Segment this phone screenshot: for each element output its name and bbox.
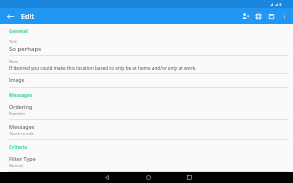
button[interactable]: Note xyxy=(0,56,293,74)
staticText: Title xyxy=(9,39,17,44)
button[interactable]: Title xyxy=(0,36,293,56)
staticText: Edit xyxy=(21,11,35,21)
button[interactable]: Ordering xyxy=(0,100,293,120)
button[interactable]: Save xyxy=(265,10,278,23)
staticText: Ordering xyxy=(9,103,33,110)
button[interactable]: More options xyxy=(278,10,291,23)
staticText: Note xyxy=(9,59,19,64)
button[interactable]: Filter Type xyxy=(0,152,293,172)
staticText: Normal xyxy=(9,163,24,168)
staticText: So perhaps xyxy=(9,45,42,53)
staticText: Image xyxy=(9,77,25,84)
button[interactable]: Add person xyxy=(239,10,252,23)
button[interactable]: Messages xyxy=(0,120,293,140)
staticText: Criteria xyxy=(9,144,28,151)
staticText: General xyxy=(9,28,28,35)
button[interactable]: Back xyxy=(102,172,113,183)
staticText: Random xyxy=(9,111,25,116)
button[interactable]: Home xyxy=(143,172,154,183)
staticText: If desired you could make this location … xyxy=(9,65,197,71)
staticText: Messages xyxy=(9,123,35,130)
staticText: Touch to edit xyxy=(9,131,34,136)
button[interactable]: Recent apps xyxy=(184,172,195,183)
staticText: Filter Type xyxy=(9,155,36,162)
button[interactable]: Navigate up xyxy=(4,10,17,23)
button[interactable]: Image xyxy=(0,74,293,88)
staticText: Messages xyxy=(9,92,33,99)
button[interactable]: Crop xyxy=(252,10,265,23)
